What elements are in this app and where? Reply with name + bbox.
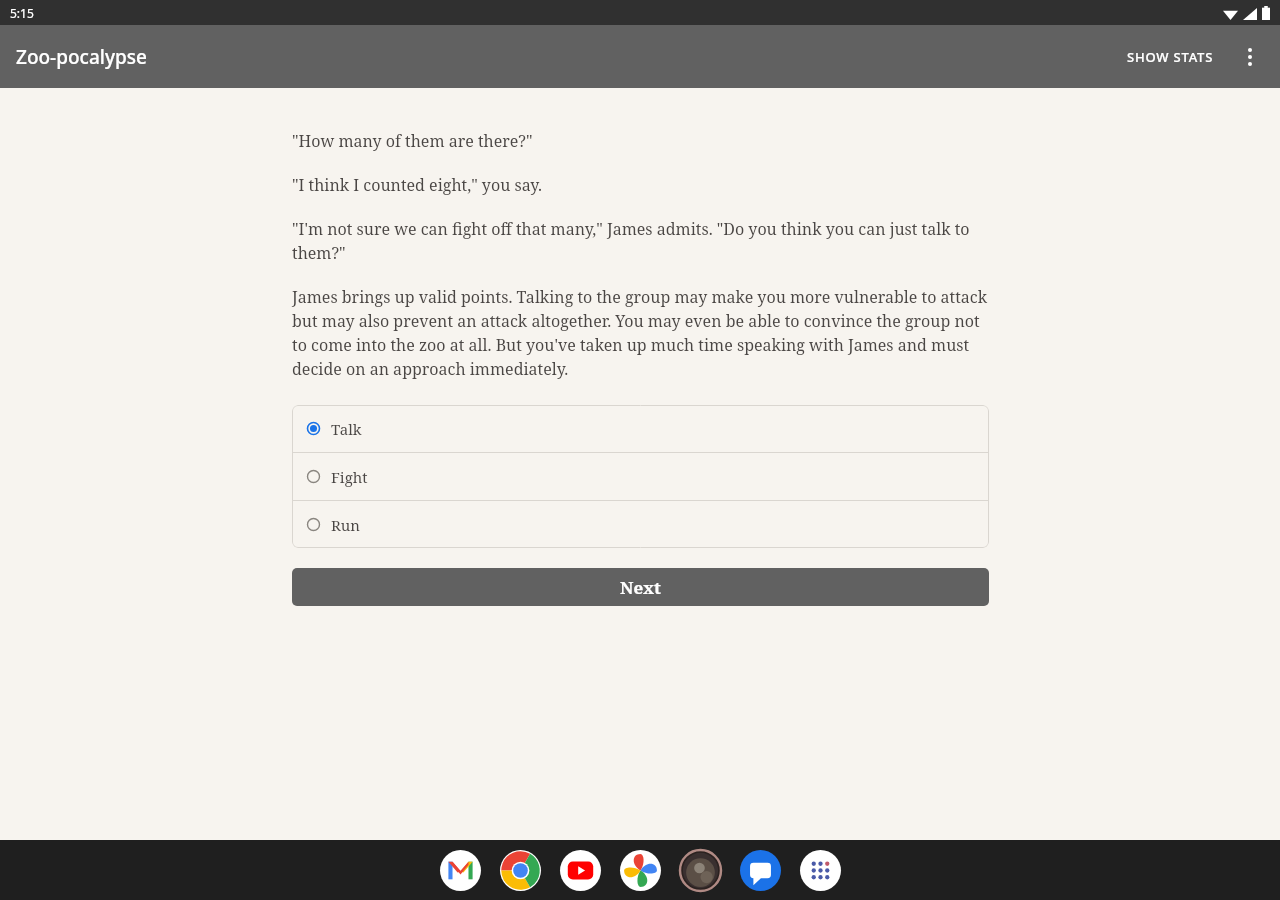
staticText: 5:15 xyxy=(10,5,34,21)
staticText: "I think I counted eight," you say. xyxy=(292,174,989,196)
staticText: "How many of them are there?" xyxy=(292,130,989,152)
staticText: Talk xyxy=(331,419,362,439)
staticText: Zoo-pocalypse xyxy=(16,44,147,70)
button[interactable]: More options xyxy=(1226,33,1274,81)
staticText: Fight xyxy=(331,467,368,487)
button[interactable]: Next xyxy=(292,568,989,606)
button[interactable]: Chrome xyxy=(500,850,541,891)
staticText: Run xyxy=(331,515,361,535)
button[interactable]: Talk xyxy=(292,405,989,452)
button[interactable]: Run xyxy=(292,501,989,548)
staticText: "I'm not sure we can fight off that many… xyxy=(292,218,989,264)
button[interactable]: YouTube xyxy=(560,850,601,891)
button[interactable]: All apps xyxy=(800,850,841,891)
button[interactable]: Gallery xyxy=(680,850,721,891)
staticText: Next xyxy=(620,576,661,599)
button[interactable]: Fight xyxy=(292,453,989,500)
button[interactable]: Photos xyxy=(620,850,661,891)
staticText: James brings up valid points. Talking to… xyxy=(292,286,989,380)
button[interactable]: SHOW STATS xyxy=(1115,34,1226,80)
button[interactable]: Messages xyxy=(740,850,781,891)
button[interactable]: Gmail xyxy=(440,850,481,891)
staticText: SHOW STATS xyxy=(1127,48,1214,66)
